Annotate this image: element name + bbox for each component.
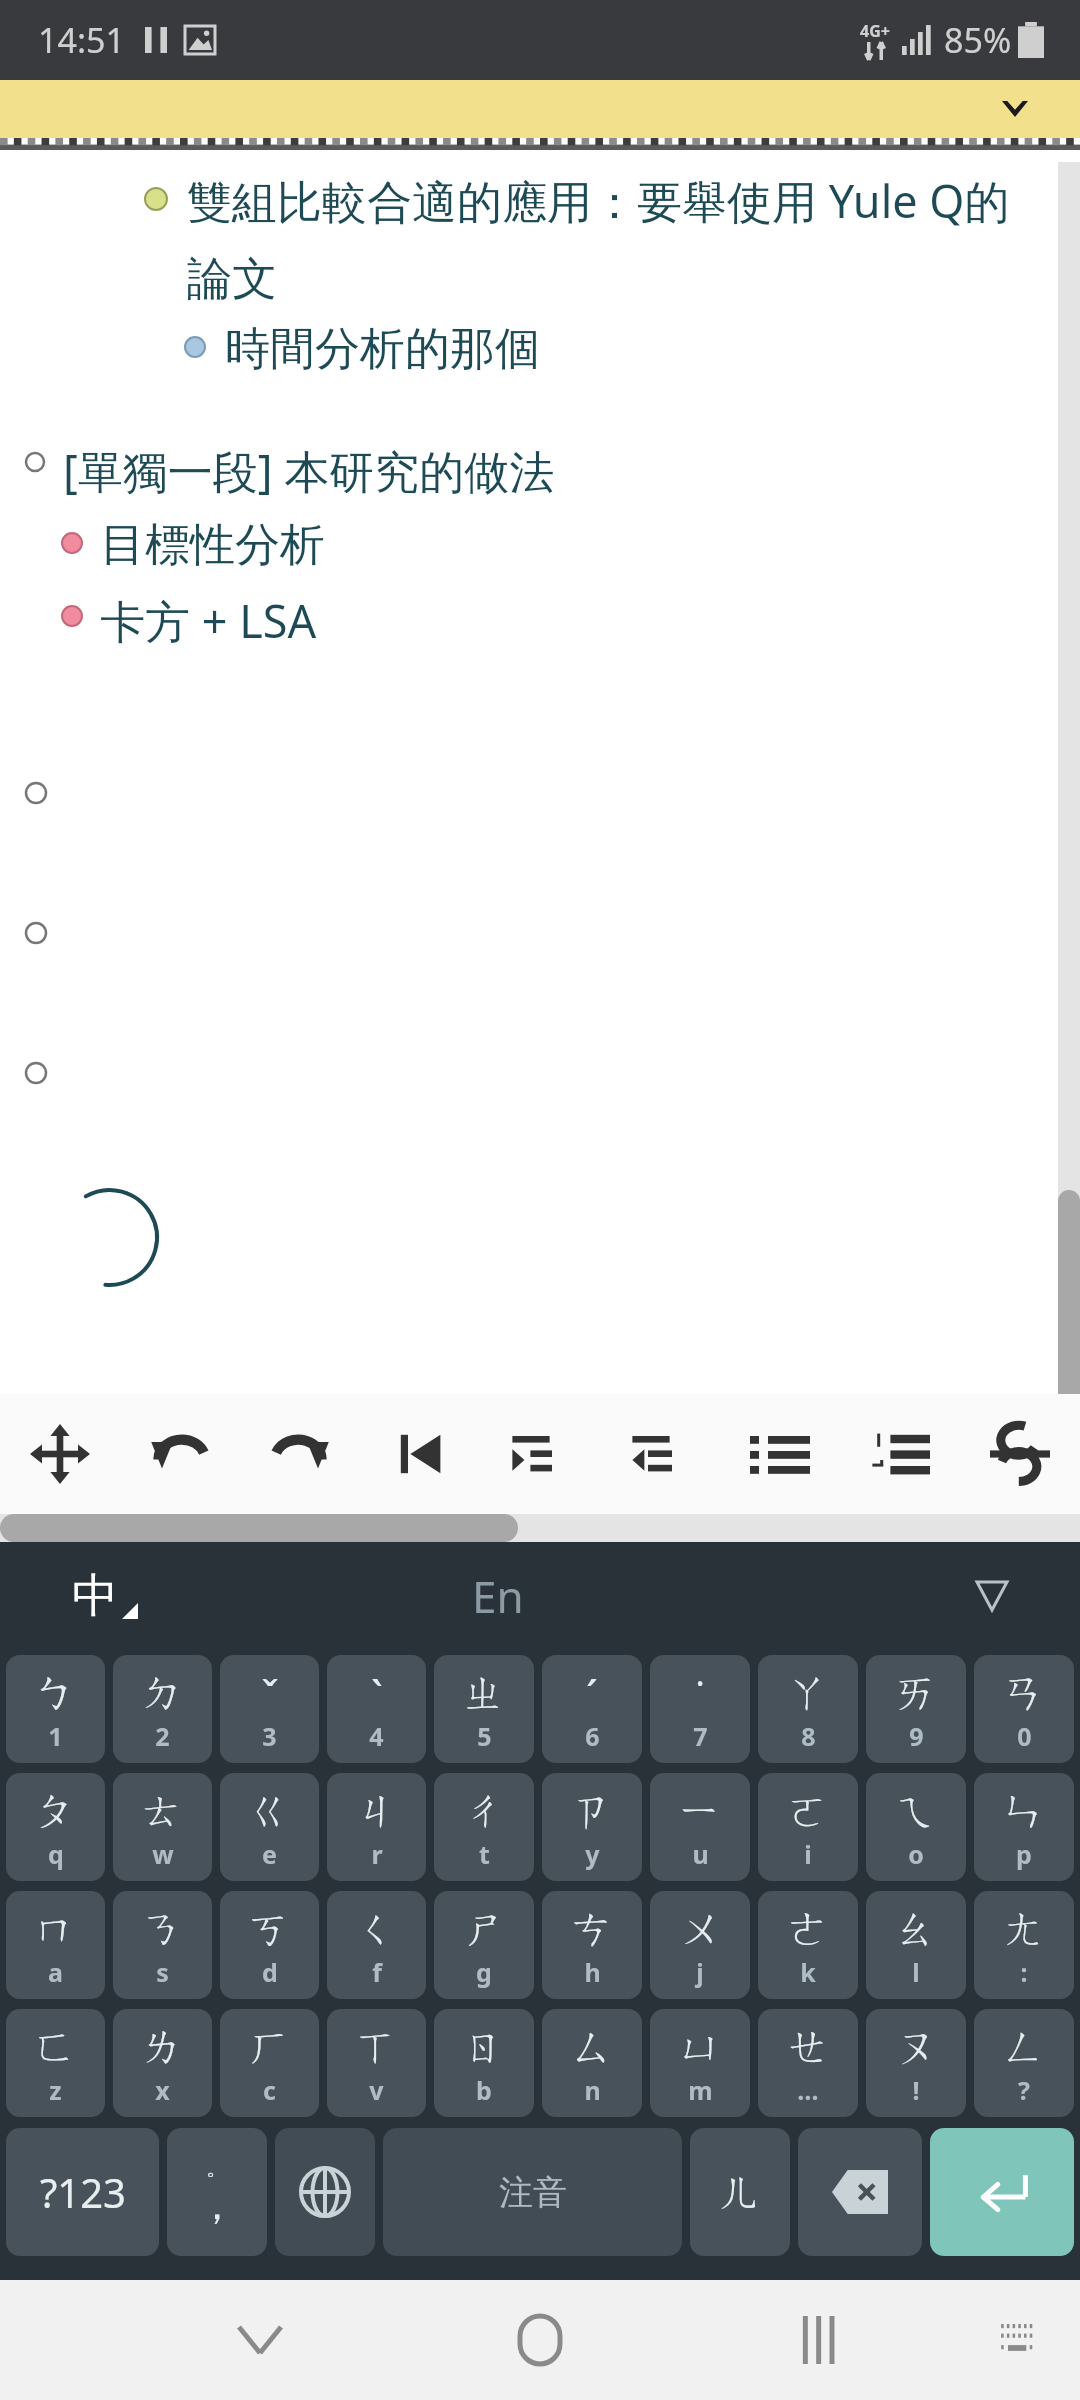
staticText: 卡方 + LSA	[100, 590, 317, 651]
button[interactable]: ㄚ	[758, 1655, 858, 1763]
button[interactable]: ㄝ	[758, 2009, 858, 2117]
button[interactable]: ?123	[6, 2128, 159, 2256]
button[interactable]: ㄣ	[974, 1773, 1074, 1881]
button[interactable]: Home	[400, 2280, 680, 2400]
staticText: ㄧ	[679, 1785, 722, 1838]
button[interactable]: ㄙ	[542, 2009, 642, 2117]
button[interactable]: ㄟ	[866, 1773, 966, 1881]
button[interactable]: En	[472, 1566, 524, 1626]
button[interactable]: ㄨ	[650, 1891, 750, 1999]
button[interactable]: ㄧ	[650, 1773, 750, 1881]
button[interactable]: ˇ	[220, 1655, 319, 1763]
button[interactable]: ㄊ	[113, 1773, 212, 1881]
button[interactable]: Bulleted list	[720, 1394, 840, 1514]
staticText: ㄗ	[571, 1785, 614, 1838]
button[interactable]: Redo	[240, 1394, 360, 1514]
staticText: ㄟ	[895, 1785, 938, 1838]
staticText: r	[371, 1837, 383, 1871]
staticText: …	[797, 2073, 819, 2107]
button[interactable]: Numbered list	[840, 1394, 960, 1514]
button[interactable]: Enter	[930, 2128, 1074, 2256]
staticText: d	[262, 1955, 278, 1989]
button[interactable]: Move	[0, 1394, 120, 1514]
button[interactable]: ㄅ	[6, 1655, 105, 1763]
button[interactable]: Recents	[680, 2280, 960, 2400]
button[interactable]: ㄠ	[866, 1891, 966, 1999]
staticText: ㄙ	[571, 2021, 614, 2074]
button[interactable]: ˋ	[327, 1655, 426, 1763]
button[interactable]: Skip to start	[360, 1394, 480, 1514]
staticText: ㄔ	[463, 1785, 506, 1838]
button[interactable]: ㄡ	[866, 2009, 966, 2117]
button[interactable]: Keyboard	[960, 2280, 1080, 2400]
button[interactable]: ㄐ	[327, 1773, 426, 1881]
staticText: ˙	[696, 1667, 704, 1724]
button[interactable]: Expand banner	[990, 84, 1040, 134]
button[interactable]: ㄆ	[6, 1773, 105, 1881]
button[interactable]: ㄔ	[434, 1773, 534, 1881]
button[interactable]: ㄕ	[434, 1891, 534, 1999]
staticText: 85%	[944, 17, 1012, 63]
button[interactable]: Back	[120, 2280, 400, 2400]
button[interactable]: ㄛ	[758, 1773, 858, 1881]
staticText: ㄡ	[895, 2021, 938, 2074]
staticText: 3	[262, 1719, 277, 1753]
button[interactable]: Decrease indent	[600, 1394, 720, 1514]
button[interactable]: Change keyboard language	[275, 2128, 375, 2256]
button[interactable]: ㄗ	[542, 1773, 642, 1881]
button[interactable]: 。	[167, 2128, 267, 2256]
button[interactable]: Strikethrough	[960, 1394, 1080, 1514]
staticText: s	[156, 1955, 169, 1989]
button[interactable]: ㄌ	[113, 2009, 212, 2117]
staticText: v	[369, 2073, 384, 2107]
button[interactable]: 中	[72, 1567, 138, 1625]
button[interactable]: ㄤ	[974, 1891, 1074, 1999]
button[interactable]: ㄦ	[690, 2128, 790, 2256]
button[interactable]: ˙	[650, 1655, 750, 1763]
staticText: ?123	[40, 2165, 126, 2219]
button[interactable]: Expand banner	[0, 80, 1080, 138]
staticText: 1	[48, 1719, 63, 1753]
staticText: ㄥ	[1003, 2021, 1046, 2074]
staticText: a	[48, 1955, 63, 1989]
staticText: 目標性分析	[100, 517, 325, 574]
staticText: ˇ	[261, 1667, 279, 1724]
staticText: 6	[585, 1719, 600, 1753]
button[interactable]: ㄋ	[113, 1891, 212, 1999]
staticText: ㄠ	[895, 1903, 938, 1956]
button[interactable]: ㄘ	[542, 1891, 642, 1999]
button[interactable]: ㄢ	[974, 1655, 1074, 1763]
button[interactable]: Increase indent	[480, 1394, 600, 1514]
button[interactable]: ㄏ	[220, 2009, 319, 2117]
staticText: ㄝ	[787, 2021, 830, 2074]
button[interactable]: ㄒ	[327, 2009, 426, 2117]
button[interactable]: ㄓ	[434, 1655, 534, 1763]
button[interactable]: ㄥ	[974, 2009, 1074, 2117]
button[interactable]: ㄇ	[6, 1891, 105, 1999]
staticText: ㄓ	[463, 1667, 506, 1720]
button[interactable]: ㄑ	[327, 1891, 426, 1999]
button[interactable]: ㄞ	[866, 1655, 966, 1763]
button[interactable]: Hide keyboard	[964, 1568, 1020, 1624]
button[interactable]: ㄖ	[434, 2009, 534, 2117]
staticText: 注音	[499, 2171, 567, 2214]
button[interactable]: ˊ	[542, 1655, 642, 1763]
button[interactable]: ㄉ	[113, 1655, 212, 1763]
staticText: ˋ	[371, 1667, 383, 1724]
staticText: w	[152, 1837, 174, 1871]
button[interactable]: 注音	[383, 2128, 682, 2256]
staticText: 7	[693, 1719, 708, 1753]
button[interactable]: ㄩ	[650, 2009, 750, 2117]
button[interactable]: ㄜ	[758, 1891, 858, 1999]
button[interactable]: ㄎ	[220, 1891, 319, 1999]
button[interactable]: ㄈ	[6, 2009, 105, 2117]
staticText: p	[1016, 1837, 1032, 1871]
button[interactable]: Backspace	[798, 2128, 922, 2256]
staticText: 4	[369, 1719, 384, 1753]
staticText: ㄞ	[895, 1667, 938, 1720]
staticText: 時間分析的那個	[225, 321, 540, 378]
staticText: 8	[801, 1719, 816, 1753]
button[interactable]: Undo	[120, 1394, 240, 1514]
staticText: ㄅ	[34, 1667, 77, 1720]
button[interactable]: ㄍ	[220, 1773, 319, 1881]
